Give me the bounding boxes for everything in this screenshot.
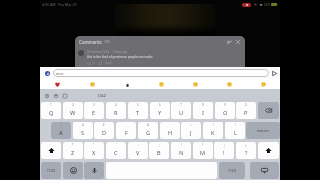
button[interactable]: 9 bbox=[215, 102, 235, 119]
button[interactable]: Emoji suggestion bbox=[178, 79, 212, 89]
staticText: " bbox=[93, 143, 95, 147]
staticText: C bbox=[114, 149, 118, 157]
staticText: 3 bbox=[93, 103, 95, 107]
button[interactable]: $ bbox=[94, 122, 114, 139]
button[interactable]: 4 bbox=[106, 102, 126, 119]
button[interactable]: ?123 bbox=[219, 162, 245, 179]
staticText: L bbox=[234, 129, 237, 137]
button[interactable]: Close comments bbox=[234, 38, 242, 46]
button[interactable]: Keyboard tool bbox=[61, 92, 69, 100]
staticText: S bbox=[81, 129, 85, 137]
button[interactable]: ? bbox=[193, 142, 213, 159]
button[interactable]: 6 bbox=[150, 102, 170, 119]
button[interactable]: Keyboard tool bbox=[52, 92, 60, 100]
button[interactable]: Emoji suggestion bbox=[40, 79, 75, 89]
button[interactable]: @ bbox=[51, 122, 71, 139]
button[interactable]: return bbox=[246, 122, 280, 139]
staticText: P bbox=[244, 109, 248, 117]
staticText: # bbox=[82, 123, 84, 127]
staticText: ! bbox=[181, 143, 182, 147]
staticText: ! bbox=[223, 149, 225, 156]
button[interactable]: Sort comments bbox=[225, 38, 233, 46]
button[interactable]: Emoji suggestion bbox=[246, 79, 280, 89]
staticText: 6 bbox=[159, 103, 161, 107]
staticText: ?123 bbox=[228, 168, 237, 173]
staticText: N bbox=[179, 149, 184, 157]
button[interactable]: Emoji suggestion bbox=[110, 79, 144, 89]
button[interactable]: + bbox=[181, 122, 201, 139]
button[interactable]: : bbox=[128, 142, 148, 159]
button[interactable]: Shift bbox=[41, 142, 61, 159]
button[interactable]: " bbox=[84, 142, 104, 159]
button[interactable]: Emoji bbox=[63, 162, 83, 179]
button[interactable]: ; bbox=[149, 142, 169, 159]
button[interactable]: Emoji suggestion bbox=[144, 79, 178, 89]
staticText: DAZ bbox=[98, 93, 107, 99]
staticText: U bbox=[179, 109, 184, 117]
staticText: 52% bbox=[264, 3, 270, 7]
staticText: : bbox=[138, 143, 139, 147]
button[interactable]: ¿ bbox=[236, 142, 256, 159]
staticText: * bbox=[72, 143, 74, 147]
staticText: ; bbox=[159, 143, 160, 147]
staticText: W bbox=[70, 109, 76, 117]
staticText: O bbox=[223, 109, 228, 117]
staticText: 12 bbox=[92, 61, 96, 65]
button[interactable]: 5 bbox=[128, 102, 148, 119]
button[interactable]: ) bbox=[225, 122, 245, 139]
button[interactable]: ( bbox=[203, 122, 223, 139]
button[interactable]: * bbox=[63, 142, 83, 159]
button[interactable]: 0 bbox=[236, 102, 256, 119]
button[interactable]: Backspace bbox=[258, 102, 279, 119]
staticText: @someone1234 · 2 days ago bbox=[87, 50, 128, 54]
staticText: - bbox=[170, 123, 171, 127]
staticText: _ bbox=[125, 123, 127, 127]
button[interactable]: Emoji suggestion bbox=[212, 79, 246, 89]
staticText: D bbox=[102, 129, 107, 137]
staticText: 141 bbox=[104, 39, 110, 44]
button[interactable]: Your account bbox=[45, 71, 50, 76]
button[interactable]: ?123 bbox=[41, 162, 61, 179]
button[interactable]: 7 bbox=[171, 102, 191, 119]
button[interactable]: ¡ bbox=[214, 142, 234, 159]
button[interactable]: Send comment bbox=[271, 70, 277, 76]
staticText: A bbox=[59, 129, 63, 137]
button[interactable]: Shift bbox=[258, 142, 279, 159]
staticText: Comments bbox=[79, 39, 102, 45]
staticText: ? bbox=[245, 149, 248, 156]
button[interactable]: 3 bbox=[84, 102, 104, 119]
button[interactable]: & bbox=[138, 122, 158, 139]
button[interactable]: nice bbox=[56, 69, 269, 77]
staticText: ¿ bbox=[245, 143, 247, 147]
button[interactable]: 1 bbox=[41, 102, 61, 119]
staticText: V bbox=[136, 149, 140, 157]
staticText: Reply bbox=[105, 61, 112, 65]
staticText: G bbox=[146, 129, 151, 137]
staticText: Q bbox=[49, 109, 54, 117]
staticText: ? bbox=[202, 143, 204, 147]
staticText: R bbox=[114, 109, 118, 117]
staticText: ) bbox=[235, 123, 236, 127]
button[interactable]: 2 bbox=[63, 102, 83, 119]
button[interactable]: Hide keyboard bbox=[250, 162, 279, 179]
staticText: J bbox=[190, 129, 192, 137]
staticText: T bbox=[136, 109, 140, 117]
button[interactable]: Voice input bbox=[84, 162, 104, 179]
button[interactable]: 8 bbox=[193, 102, 213, 119]
staticText: 0 bbox=[245, 103, 247, 107]
button[interactable]: ' bbox=[106, 142, 126, 159]
staticText: ( bbox=[213, 123, 214, 127]
staticText: ¡ bbox=[224, 143, 225, 147]
staticText: K bbox=[211, 129, 215, 137]
button[interactable]: Keyboard tool bbox=[43, 92, 51, 100]
staticText: this is the kind of greatness people can… bbox=[87, 55, 153, 59]
button[interactable]: - bbox=[160, 122, 180, 139]
staticText: 8 bbox=[202, 103, 204, 107]
button[interactable]: ! bbox=[171, 142, 191, 159]
button[interactable]: Emoji suggestion bbox=[75, 79, 110, 89]
button[interactable]: _ bbox=[116, 122, 136, 139]
staticText: M bbox=[200, 149, 206, 157]
button[interactable]: # bbox=[73, 122, 93, 139]
